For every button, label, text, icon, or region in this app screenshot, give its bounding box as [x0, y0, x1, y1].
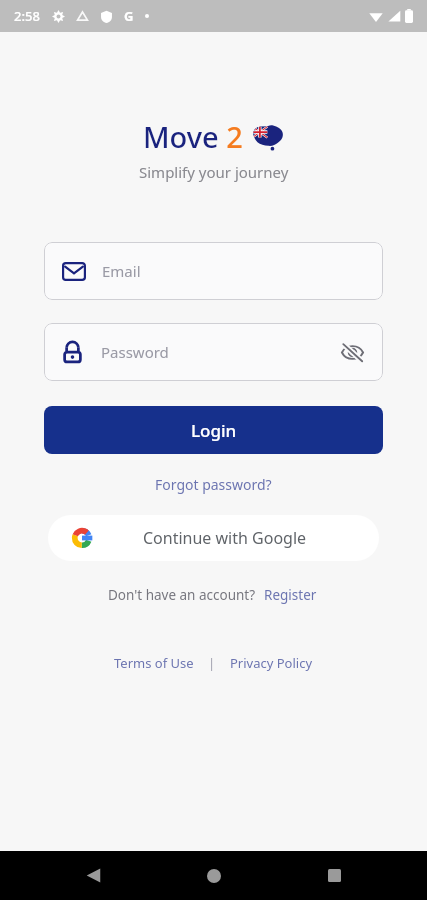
- button[interactable]: Privacy Policy: [226, 651, 317, 675]
- button[interactable]: Register: [262, 583, 319, 607]
- button[interactable]: Back: [65, 851, 121, 900]
- button[interactable]: Email: [44, 242, 383, 300]
- staticText: Login: [191, 419, 237, 442]
- staticText: Email: [102, 261, 141, 281]
- staticText: Move 2: [143, 117, 243, 156]
- staticText: Don't have an account?: [108, 586, 256, 604]
- staticText: G: [124, 7, 134, 25]
- button[interactable]: Show password: [335, 335, 369, 369]
- staticText: |: [208, 654, 216, 672]
- button[interactable]: Recent apps: [306, 851, 362, 900]
- staticText: Forgot password?: [155, 475, 272, 494]
- staticText: 2:58: [14, 7, 40, 25]
- staticText: Continue with Google: [143, 527, 307, 549]
- button[interactable]: Continue with Google: [48, 515, 379, 561]
- button[interactable]: Forgot password?: [147, 471, 280, 498]
- staticText: Privacy Policy: [230, 654, 313, 672]
- staticText: Simplify your journey: [139, 162, 289, 182]
- staticText: Terms of Use: [114, 654, 194, 672]
- staticText: Register: [264, 586, 317, 604]
- button[interactable]: Login: [44, 406, 383, 454]
- button[interactable]: Home: [186, 851, 242, 900]
- staticText: Password: [101, 342, 335, 362]
- button[interactable]: Password: [44, 323, 383, 381]
- button[interactable]: Terms of Use: [110, 651, 198, 675]
